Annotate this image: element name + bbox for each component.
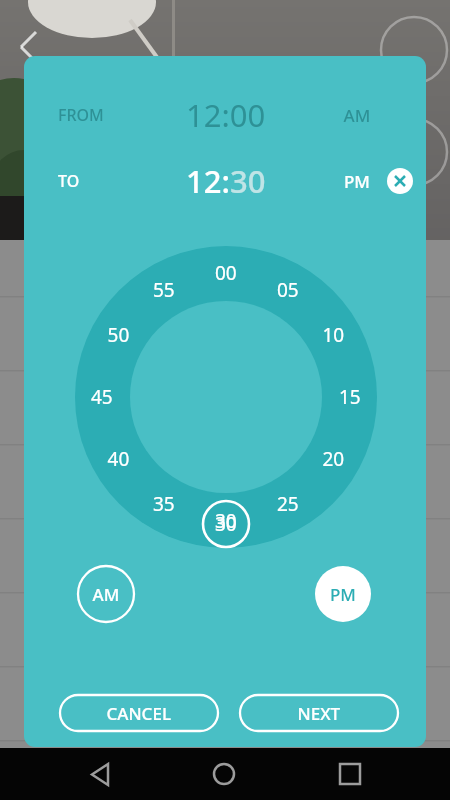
button[interactable] [34,90,404,140]
button[interactable]: AM [78,566,134,622]
button[interactable]: Recents [300,748,450,800]
button[interactable]: Close [387,168,413,194]
button[interactable]: Back [0,748,150,800]
button[interactable]: PM [315,566,371,622]
button[interactable] [240,695,398,731]
button[interactable] [60,695,218,731]
button[interactable] [34,156,374,206]
button[interactable]: Minute dial [75,246,377,548]
button[interactable]: Home [150,748,300,800]
